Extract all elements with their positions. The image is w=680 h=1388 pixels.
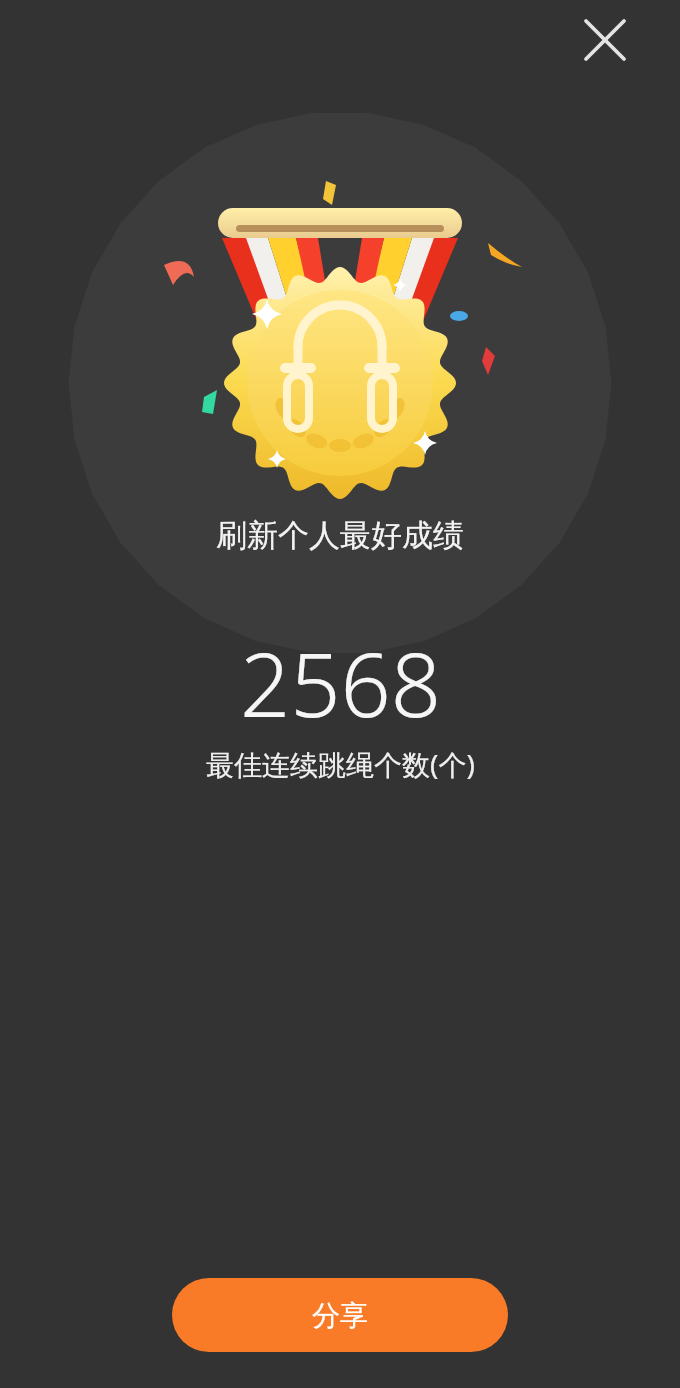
staticText: 刷新个人最好成绩 [216,516,464,555]
button[interactable]: 分享 [172,1278,508,1352]
staticText: 最佳连续跳绳个数(个) [206,745,475,783]
staticText: 分享 [312,1298,368,1333]
button[interactable]: Close [565,0,645,80]
staticText: 2568 [240,623,441,743]
